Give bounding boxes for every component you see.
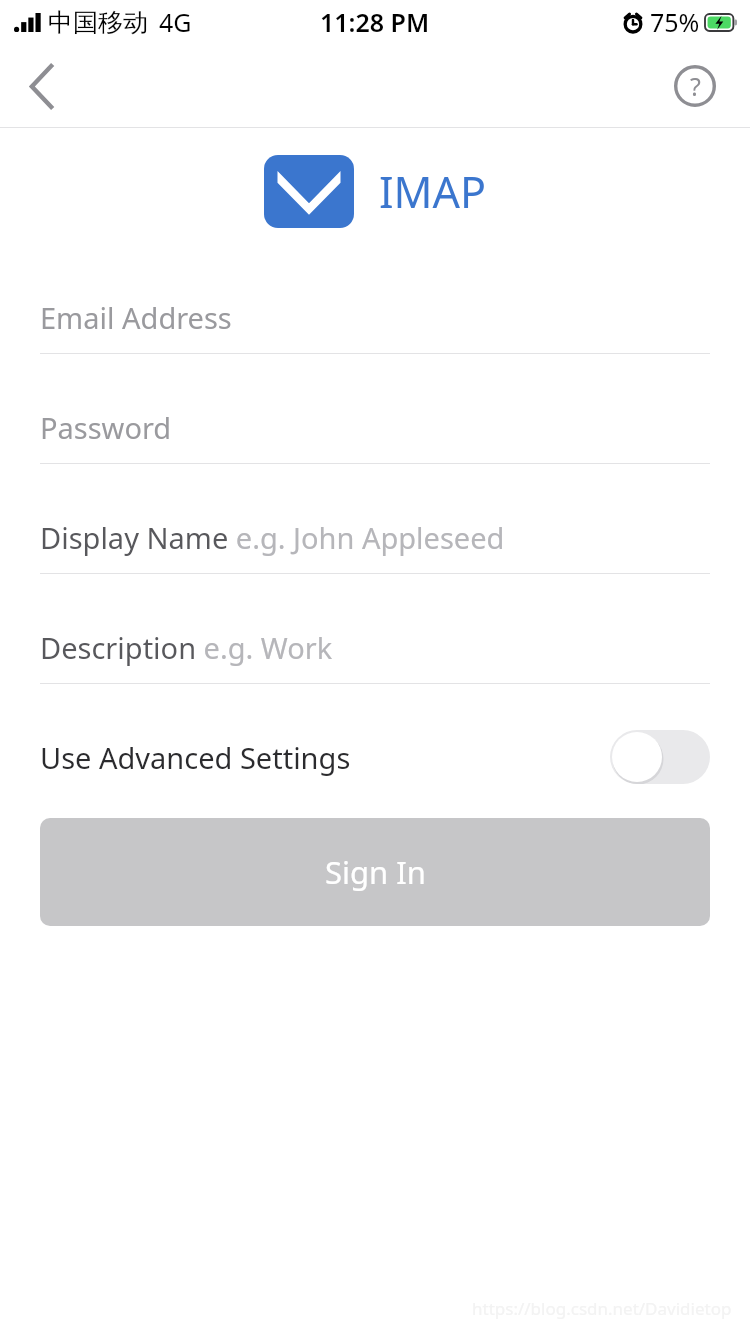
button[interactable]: Use Advanced Settings [0, 721, 750, 793]
staticText: ? [690, 69, 701, 103]
staticText: 11:28 PM [320, 5, 430, 39]
staticText: Password [40, 408, 172, 447]
button[interactable]: Help [668, 59, 722, 113]
button[interactable]: Description e.g. Work [0, 611, 750, 721]
staticText: 75% [650, 5, 700, 39]
button[interactable]: Use Advanced Settings toggle [610, 730, 710, 784]
staticText: Use Advanced Settings [40, 738, 351, 777]
button[interactable]: Back [12, 57, 70, 115]
button[interactable]: Password [0, 391, 750, 501]
staticText: 4G [159, 5, 192, 39]
staticText: IMAP [379, 162, 487, 221]
staticText: Description e.g. Work [40, 628, 333, 667]
button[interactable]: Email Address [0, 281, 750, 391]
staticText: https://blog.csdn.net/Davidietop [472, 1297, 732, 1320]
staticText: Sign In [325, 851, 426, 893]
staticText: Display Name e.g. John Appleseed [40, 518, 505, 557]
staticText: Email Address [40, 298, 232, 337]
button[interactable]: Sign In [40, 818, 710, 926]
button[interactable]: Display Name e.g. John Appleseed [0, 501, 750, 611]
staticText: 中国移动 [48, 7, 148, 38]
